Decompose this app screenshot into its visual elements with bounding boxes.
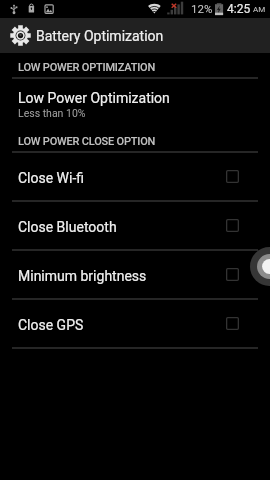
staticText: LOW POWER CLOSE OPTION	[18, 135, 156, 148]
staticText: 12%	[191, 2, 213, 15]
button[interactable]: Minimum brightness	[0, 250, 270, 299]
staticText: Battery Optimization	[36, 28, 164, 44]
staticText: AM	[253, 5, 266, 14]
staticText: LOW POWER OPTIMIZATION	[18, 61, 156, 74]
button[interactable]: Settings	[0, 18, 270, 53]
staticText: Low Power Optimization	[18, 90, 170, 106]
button[interactable]: Close Wi-fi	[0, 152, 270, 201]
button[interactable]: Low Power Optimization	[0, 78, 270, 150]
staticText: Close Bluetooth	[18, 219, 117, 235]
staticText: Close Wi-fi	[18, 170, 85, 186]
button[interactable]: Assistive touch	[250, 247, 270, 286]
staticText: 4:25	[227, 2, 251, 16]
staticText: Less than 10%	[18, 107, 86, 119]
staticText: Close GPS	[18, 317, 84, 333]
button[interactable]: Close Bluetooth	[0, 201, 270, 250]
staticText: Minimum brightness	[18, 268, 147, 284]
other: Settings	[10, 25, 31, 46]
button[interactable]: Close GPS	[0, 299, 270, 348]
